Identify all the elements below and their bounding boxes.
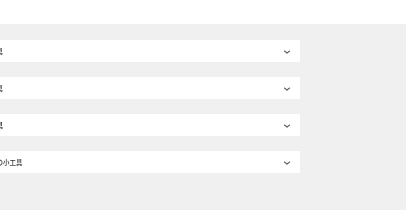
button[interactable]: ドキュメントの小工具 [0,40,300,62]
other: Expand section [281,82,293,94]
staticText: ドキュメントの小工具 [0,46,3,55]
other: Expand section [281,45,293,57]
button[interactable]: スプレッドシートの小工具 [0,77,300,99]
staticText: プレゼンテーションの小工具 [0,120,4,129]
other: Expand section [281,156,293,168]
staticText: スプレッドシートの小工具 [0,83,3,92]
staticText: その他の小工具 [0,157,23,166]
other: Expand section [281,119,293,131]
button[interactable]: その他の小工具 [0,151,300,173]
button[interactable]: プレゼンテーションの小工具 [0,114,300,136]
